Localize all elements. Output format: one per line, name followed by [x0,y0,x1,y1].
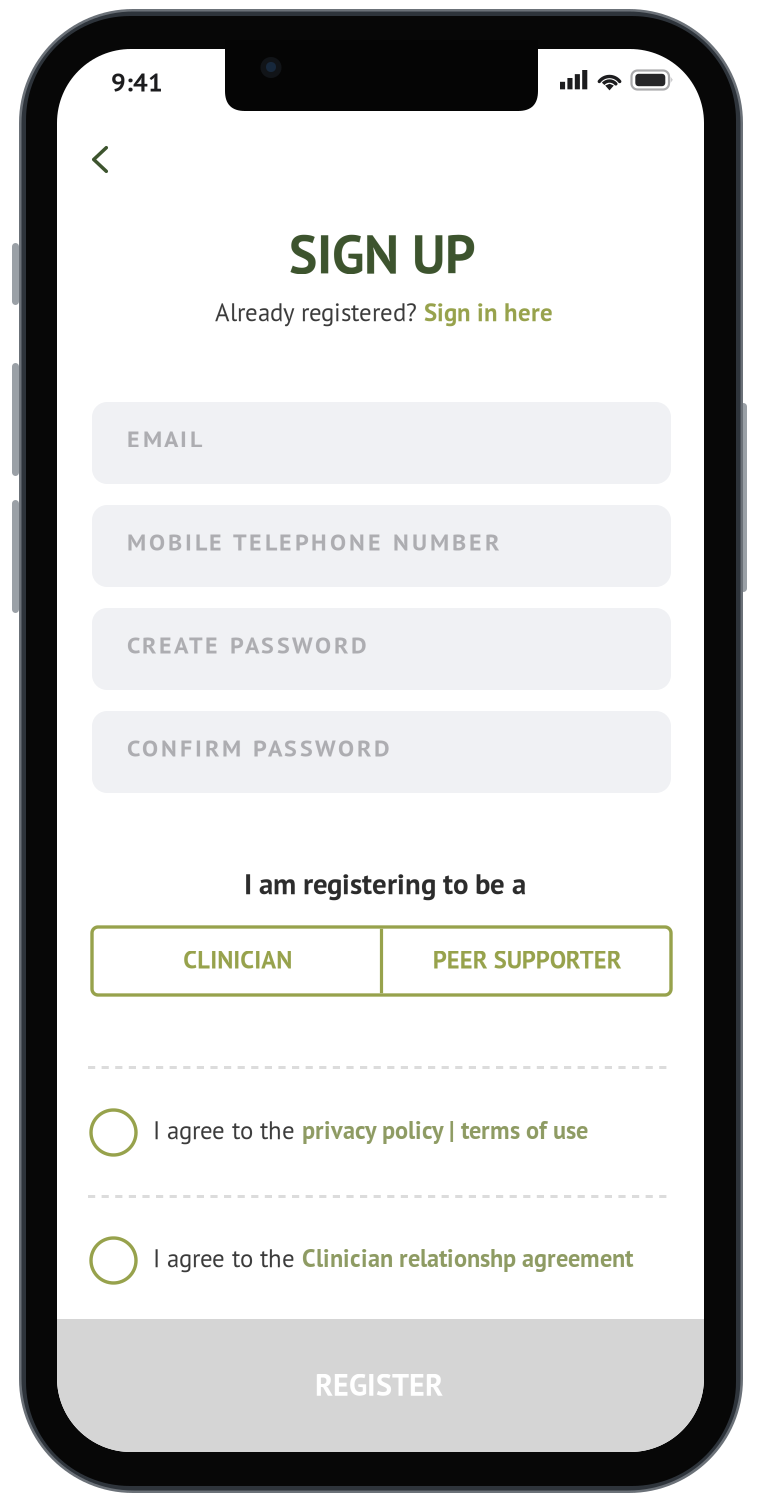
button[interactable]: Back [75,133,125,187]
button[interactable]: REGISTER [57,1319,704,1452]
staticText: Sign in here [424,296,553,328]
staticText: Clinician relationshp agreement [302,1242,633,1274]
staticText: M O B I L E T E L E P H O N E N U M B E … [127,526,499,557]
button[interactable]: Sign in here [424,296,553,328]
staticText: privacy policy | terms of use [302,1114,588,1146]
staticText: C R E A T E P A S S W O R D [127,629,367,660]
staticText: I agree to the [153,1114,302,1146]
button[interactable]: I agree to the Clinician relationshp agr… [90,1215,673,1303]
staticText: Already registered? [215,296,424,328]
button[interactable]: PEER SUPPORTER [381,927,671,995]
staticText: 9:41 [111,65,163,99]
button[interactable]: I agree to the privacy policy and terms … [90,1087,673,1175]
staticText: I agree to the [153,1242,302,1274]
staticText: CLINICIAN [183,944,292,975]
staticText: C O N F I R M P A S S W O R D [127,732,390,763]
staticText: I am registering to be a [244,865,526,902]
staticText: PEER SUPPORTER [433,944,622,975]
staticText: REGISTER [315,1365,443,1404]
staticText: E M A I L [127,423,202,454]
staticText: SIGN UP [289,219,476,288]
button[interactable]: CLINICIAN [92,927,381,995]
